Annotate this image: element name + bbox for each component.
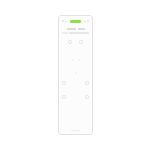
button[interactable]: App shortcut [85, 95, 89, 99]
button[interactable]: App shortcut [62, 95, 66, 99]
button[interactable] [62, 32, 89, 34]
button[interactable]: App shortcut [62, 81, 66, 85]
button[interactable] [70, 20, 81, 23]
button[interactable]: Feature tile [68, 40, 72, 44]
button[interactable]: Feature tile [79, 40, 83, 44]
button[interactable]: App shortcut [85, 81, 89, 85]
